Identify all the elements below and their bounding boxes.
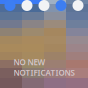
- staticText: NO NEW NOTIFICATIONS: [13, 57, 74, 78]
- button[interactable]: Toggle off: [72, 0, 83, 11]
- button[interactable]: Toggle on: [55, 0, 66, 11]
- button[interactable]: Toggle off: [38, 0, 49, 11]
- button[interactable]: Toggle on: [4, 0, 15, 11]
- button[interactable]: Toggle off: [21, 0, 32, 11]
